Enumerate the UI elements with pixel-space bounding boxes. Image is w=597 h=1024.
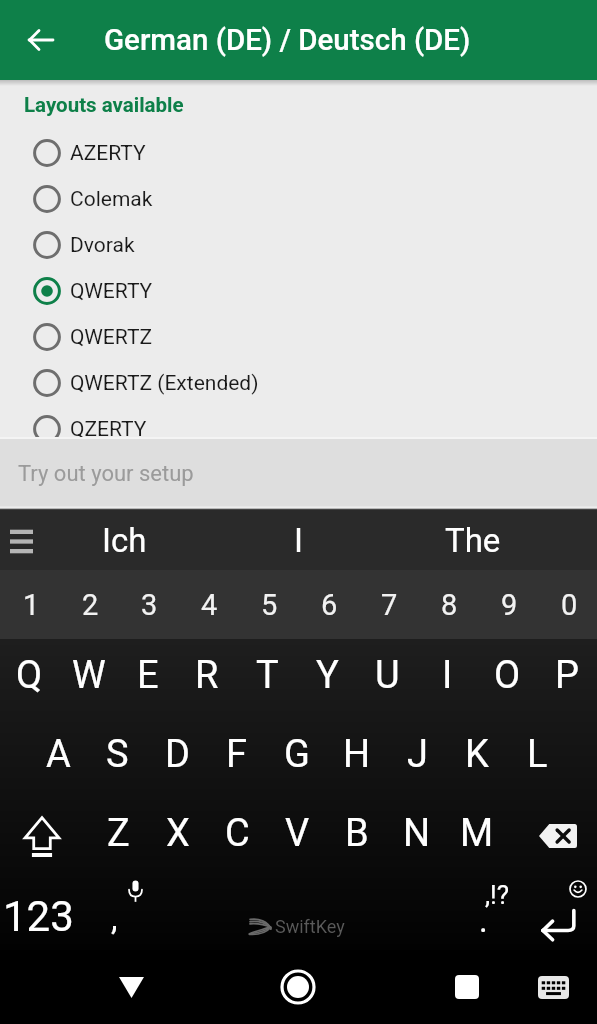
button[interactable]: QWERTY [0,268,597,314]
staticText: V [285,811,310,856]
staticText: Q [16,653,43,698]
button[interactable]: 8 [417,570,477,639]
button[interactable]: L [507,718,567,797]
staticText: X [166,811,190,856]
staticText: 5 [261,588,278,622]
button[interactable]: Period, punctuation [440,875,526,950]
staticText: Try out your setup [18,461,194,487]
button[interactable]: 7 [357,570,417,639]
staticText: K [465,732,489,777]
staticText: S [106,732,129,777]
staticText: I [294,521,303,560]
button[interactable]: QZERTY [0,406,597,452]
button[interactable]: Enter [526,875,597,950]
button[interactable]: Navigate up [15,14,67,66]
button[interactable]: S [88,718,147,797]
button[interactable]: T [237,639,297,718]
staticText: Dvorak [70,233,135,258]
staticText: 4 [201,588,218,622]
staticText: G [284,732,310,777]
button[interactable]: Ich [40,510,208,570]
button[interactable]: SwiftKey [174,875,424,950]
button[interactable]: Dvorak [0,222,597,268]
button[interactable]: Switch keyboard [513,950,593,1024]
staticText: R [195,653,219,698]
button[interactable]: Delete [507,797,597,875]
button[interactable]: 4 [177,570,237,639]
button[interactable]: Keyboard menu [0,510,42,570]
button[interactable]: Q [0,639,59,718]
button[interactable]: Hide keyboard [86,950,176,1024]
staticText: . [479,901,488,940]
staticText: 1 [23,588,40,622]
button[interactable]: N [387,797,447,875]
staticText: J [407,732,428,777]
button[interactable]: Y [297,639,357,718]
button[interactable]: H [327,718,387,797]
staticText: H [343,732,371,777]
button[interactable]: 123 [0,875,88,950]
staticText: Y [316,653,339,698]
button[interactable]: The [389,510,557,570]
button[interactable]: 0 [537,570,597,639]
staticText: F [226,732,248,777]
button[interactable]: J [387,718,447,797]
staticText: A [46,732,71,777]
staticText: 8 [441,588,458,622]
staticText: QWERTZ (Extended) [70,371,259,396]
button[interactable]: X [148,797,207,875]
staticText: Z [107,811,130,856]
staticText: 7 [381,588,398,622]
button[interactable]: Comma, voice input [88,875,174,950]
staticText: Layouts available [24,93,184,117]
staticText: I [442,653,453,698]
staticText: 9 [501,588,518,622]
button[interactable]: U [357,639,417,718]
staticText: 0 [561,588,578,622]
staticText: C [225,811,250,856]
button[interactable]: Recent apps [427,950,507,1024]
button[interactable]: E [118,639,177,718]
button[interactable]: G [267,718,327,797]
staticText: P [555,653,579,698]
staticText: M [460,811,494,856]
button[interactable]: Home [253,950,343,1024]
button[interactable]: V [267,797,327,875]
staticText: O [494,653,521,698]
button[interactable]: 6 [297,570,357,639]
staticText: E [137,653,159,698]
staticText: QZERTY [70,417,147,442]
button[interactable]: K [447,718,507,797]
button[interactable]: P [537,639,597,718]
button[interactable]: AZERTY [0,130,597,176]
staticText: The [445,521,501,560]
button[interactable]: 5 [237,570,297,639]
button[interactable]: A [29,718,88,797]
staticText: 3 [141,588,158,622]
staticText: B [345,811,369,856]
staticText: L [527,732,548,777]
button[interactable]: F [207,718,267,797]
button[interactable]: 3 [118,570,177,639]
button[interactable]: Colemak [0,176,597,222]
button[interactable]: O [477,639,537,718]
button[interactable]: 1 [0,570,59,639]
button[interactable]: 9 [477,570,537,639]
staticText: SwiftKey [275,916,345,937]
button[interactable]: M [447,797,507,875]
button[interactable]: QWERTZ (Extended) [0,360,597,406]
button[interactable]: QWERTZ [0,314,597,360]
button[interactable]: B [327,797,387,875]
staticText: W [72,653,106,698]
button[interactable]: Shift [0,797,89,875]
button[interactable]: R [177,639,237,718]
button[interactable]: 2 [59,570,118,639]
button[interactable]: Z [89,797,148,875]
staticText: N [403,811,431,856]
button[interactable]: I [417,639,477,718]
button[interactable]: D [147,718,207,797]
button[interactable]: I [214,510,382,570]
button[interactable]: C [207,797,267,875]
button[interactable]: Try out your setup [0,437,597,510]
button[interactable]: W [59,639,118,718]
